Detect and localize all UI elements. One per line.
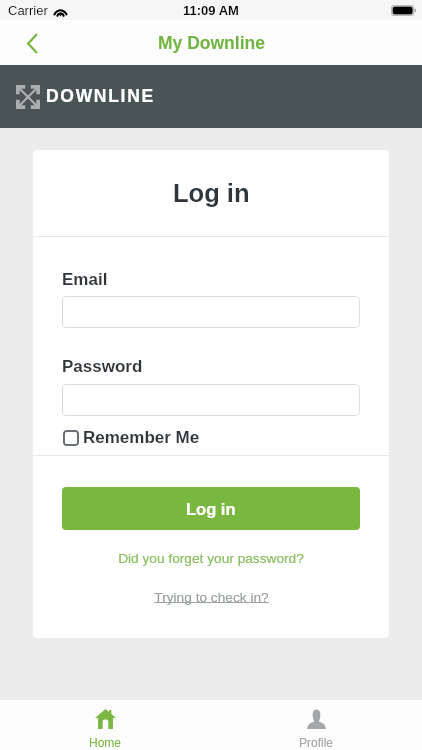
staticText: Log in <box>186 500 236 518</box>
staticText: 11:09 AM <box>183 3 239 18</box>
button[interactable]: Trying to check in? <box>62 590 360 605</box>
staticText: Home <box>89 736 122 749</box>
staticText: Carrier <box>8 3 48 18</box>
button[interactable]: Log in <box>62 487 360 530</box>
staticText: Trying to check in? <box>154 590 269 605</box>
staticText: Log in <box>173 179 250 207</box>
staticText: Remember Me <box>83 428 200 447</box>
button[interactable]: Did you forget your password? <box>62 551 360 566</box>
button[interactable] <box>62 384 360 416</box>
button[interactable]: Profile <box>211 700 422 750</box>
button[interactable]: Home <box>0 700 211 750</box>
staticText: DOWNLINE <box>46 86 155 106</box>
button[interactable]: Back <box>13 23 51 63</box>
staticText: Email <box>62 270 108 289</box>
staticText: Password <box>62 357 143 376</box>
staticText: Did you forget your password? <box>118 551 304 566</box>
staticText: My Downline <box>158 33 265 53</box>
staticText: Profile <box>299 736 334 749</box>
button[interactable] <box>62 296 360 328</box>
button[interactable]: Remember Me <box>62 428 200 447</box>
